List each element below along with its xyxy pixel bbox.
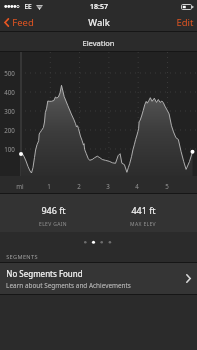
button[interactable]: 441 ft <box>113 204 173 232</box>
staticText: mi <box>16 182 24 190</box>
staticText: 5 <box>165 182 169 190</box>
staticText: Learn about Segments and Achievements <box>6 281 131 290</box>
other: Open segments <box>186 274 191 283</box>
button[interactable]: Feed <box>0 14 40 31</box>
button[interactable]: Edit <box>170 14 197 31</box>
staticText: Feed <box>12 16 34 29</box>
staticText: 18:57 <box>90 2 108 12</box>
staticText: 3 <box>106 182 110 190</box>
staticText: 300 <box>4 107 15 115</box>
staticText: SEGMENTS <box>6 253 38 261</box>
staticText: 500 <box>4 69 15 77</box>
staticText: Walk <box>88 16 110 29</box>
staticText: 4 <box>135 182 139 190</box>
staticText: 946 ft <box>41 204 66 216</box>
staticText: MAX ELEV <box>130 221 156 228</box>
staticText: EE <box>24 2 32 11</box>
staticText: 1 <box>47 182 51 190</box>
staticText: Elevation <box>82 38 115 48</box>
staticText: 441 ft <box>131 204 156 216</box>
staticText: ELEV GAIN <box>39 221 67 228</box>
staticText: 400 <box>4 88 15 96</box>
button[interactable]: No Segments Found <box>0 263 197 294</box>
staticText: Edit <box>176 16 194 29</box>
staticText: 100 <box>4 145 15 153</box>
button[interactable]: 946 ft <box>23 204 83 232</box>
staticText: No Segments Found <box>6 268 83 279</box>
staticText: 200 <box>4 126 15 134</box>
staticText: 2 <box>77 182 81 190</box>
